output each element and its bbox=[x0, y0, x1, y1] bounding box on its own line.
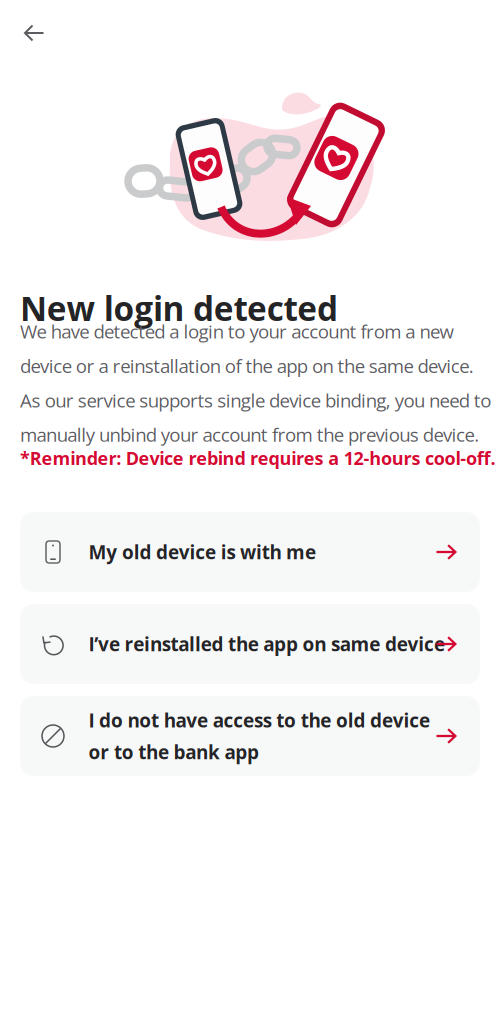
staticText: New login detected bbox=[20, 285, 338, 331]
staticText: device or a reinstallation of the app on… bbox=[20, 353, 474, 378]
button[interactable]: I’ve reinstalled the app on same device bbox=[20, 604, 480, 684]
staticText: or to the bank app bbox=[88, 739, 259, 765]
staticText: My old device is with me bbox=[88, 539, 316, 565]
staticText: manually unbind your account from the pr… bbox=[20, 422, 479, 447]
button[interactable]: My old device is with me bbox=[20, 512, 480, 592]
button[interactable]: Back bbox=[10, 11, 58, 55]
button[interactable]: I do not have access to the old device bbox=[20, 696, 480, 776]
staticText: *Reminder: Device rebind requires a 12-h… bbox=[20, 446, 495, 470]
staticText: As our service supports single device bi… bbox=[20, 387, 491, 413]
staticText: I do not have access to the old device bbox=[88, 707, 430, 733]
staticText: I’ve reinstalled the app on same device bbox=[88, 631, 445, 657]
staticText: We have detected a login to your account… bbox=[20, 319, 453, 344]
